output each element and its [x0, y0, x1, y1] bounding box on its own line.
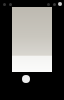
button[interactable]: Timer	[7, 1, 13, 7]
button[interactable]: Settings	[51, 1, 57, 7]
button[interactable]: Flash	[1, 1, 7, 7]
button[interactable]: More	[57, 1, 63, 7]
button[interactable]: Shutter	[22, 75, 30, 83]
button[interactable]: Ratio	[45, 1, 51, 7]
